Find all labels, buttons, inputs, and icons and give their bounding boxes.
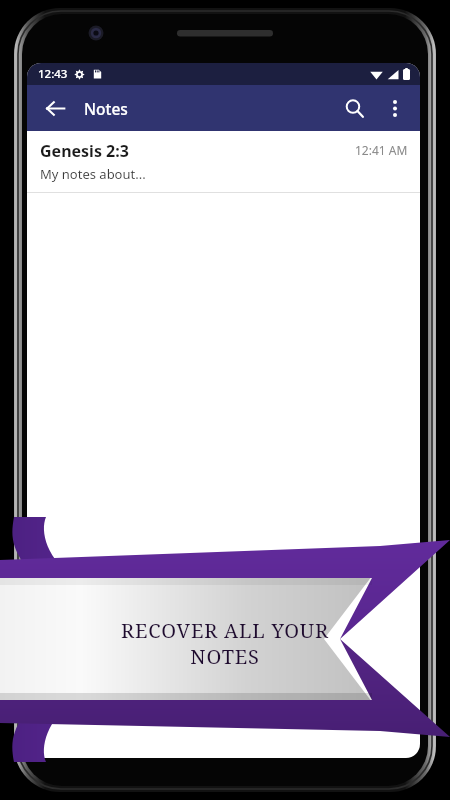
button[interactable]: Search: [333, 87, 375, 129]
staticText: RECOVER ALL YOUR NOTES: [75, 617, 375, 670]
button[interactable]: More options: [375, 88, 415, 128]
other: Recover all your notes banner: [0, 0, 450, 800]
staticText: Genesis 2:3: [40, 140, 129, 162]
staticText: 12:41 AM: [355, 142, 408, 158]
staticText: Notes: [84, 98, 128, 119]
staticText: 12:43: [38, 66, 68, 82]
staticText: My notes about...: [40, 165, 146, 183]
button[interactable]: Back: [35, 88, 75, 128]
button[interactable]: Genesis 2:3: [27, 131, 420, 193]
button[interactable]: RECOVER ALL YOUR NOTES: [75, 617, 375, 670]
